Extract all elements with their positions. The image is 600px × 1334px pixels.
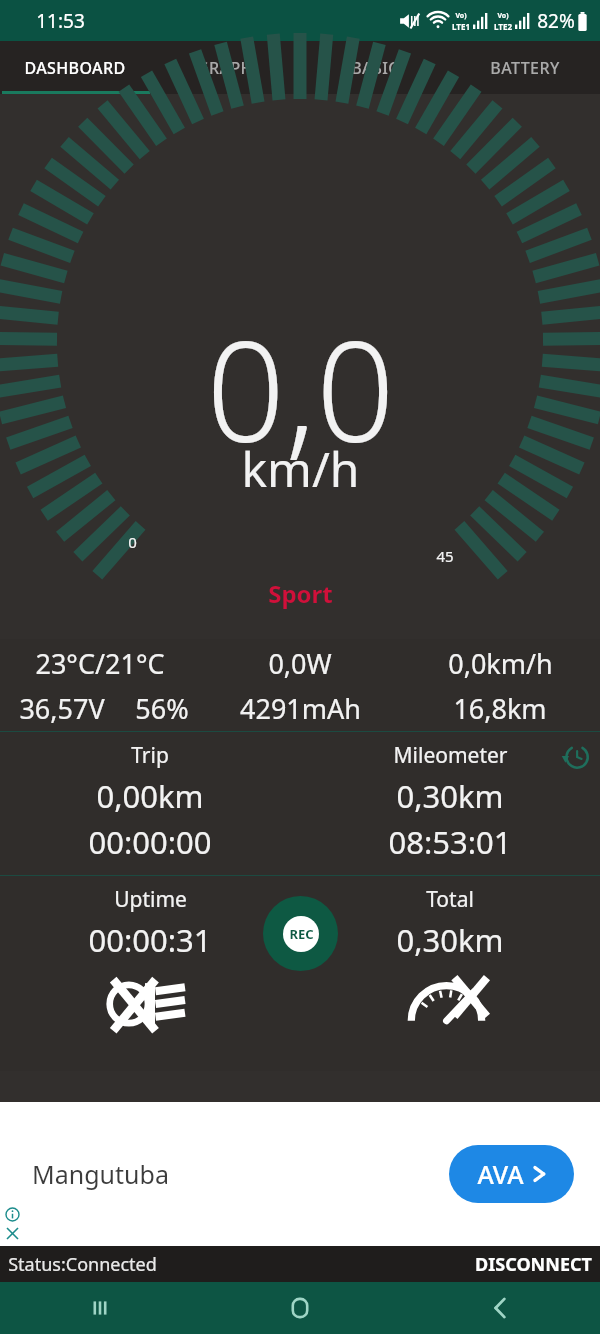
button[interactable]: DISCONNECT [475, 1252, 600, 1277]
staticText: 0,0 [206, 294, 395, 482]
button[interactable]: Back [400, 1282, 600, 1334]
staticText: Mangutuba [32, 1157, 169, 1191]
staticText: 0,0km/h [448, 645, 553, 682]
staticText: 56% [135, 690, 189, 727]
staticText: 45 [436, 546, 454, 566]
button[interactable]: Cruise control off [401, 973, 499, 1035]
staticText: 0,30km [396, 775, 504, 817]
staticText: km/h [241, 436, 360, 501]
staticText: GRAPH [197, 57, 253, 79]
staticText: 08:53:01 [388, 821, 512, 863]
button[interactable]: DASHBOARD [0, 41, 150, 94]
button[interactable]: Recent apps [0, 1282, 200, 1334]
staticText: LTE2 [494, 21, 512, 32]
button[interactable]: Reset trip history [559, 740, 593, 774]
staticText: 0,00km [96, 775, 204, 817]
staticText: 00:00:00 [88, 821, 212, 863]
button[interactable]: BASIC [300, 41, 450, 94]
staticText: Trip [131, 741, 169, 770]
button[interactable]: Ad information [3, 1205, 22, 1224]
staticText: DISCONNECT [475, 1252, 592, 1277]
staticText: 11:53 [36, 8, 85, 34]
staticText: 16,8km [453, 690, 547, 727]
staticText: Status:Connected [8, 1252, 157, 1277]
staticText: REC [289, 925, 314, 943]
button[interactable]: Record [263, 896, 338, 971]
staticText: 00:00:31 [88, 919, 212, 961]
staticText: Mileometer [393, 741, 508, 770]
staticText: 23°C/21°C [35, 645, 165, 682]
staticText: Vo) [497, 11, 509, 21]
staticText: Uptime [114, 885, 187, 914]
staticText: Sport [268, 577, 333, 610]
staticText: AVA [477, 1157, 524, 1191]
staticText: DASHBOARD [24, 57, 126, 79]
staticText: Total [426, 885, 474, 914]
staticText: 82% [537, 8, 575, 34]
button[interactable]: Home [200, 1282, 400, 1334]
staticText: 0,0W [268, 645, 332, 682]
staticText: BASIC [351, 57, 399, 79]
staticText: LTE1 [452, 21, 470, 32]
staticText: 4291mAh [240, 690, 361, 727]
button[interactable]: BATTERY [450, 41, 600, 94]
button[interactable]: GRAPH [150, 41, 300, 94]
staticText: BATTERY [490, 57, 560, 79]
button[interactable]: Headlight off [101, 973, 199, 1035]
button[interactable]: Trip [0, 732, 300, 875]
button[interactable]: AVA [449, 1145, 574, 1203]
staticText: Vo) [455, 11, 467, 21]
button[interactable]: Close ad [3, 1224, 22, 1243]
staticText: 0,30km [396, 919, 504, 961]
button[interactable]: Mileometer [300, 732, 600, 875]
staticText: 0 [128, 532, 137, 552]
staticText: 36,57V [19, 690, 105, 727]
